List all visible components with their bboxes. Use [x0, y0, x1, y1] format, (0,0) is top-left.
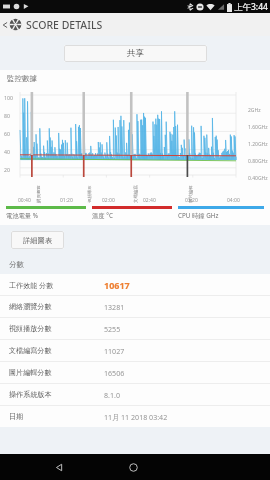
staticText: 40 — [4, 148, 10, 155]
button[interactable]: 日期 — [0, 406, 270, 427]
staticText: 共享 — [127, 48, 144, 59]
staticText: 圖片編輯 — [188, 185, 194, 203]
staticText: 04:00 — [227, 197, 240, 204]
staticText: 01:20 — [60, 197, 73, 204]
staticText: 網絡瀏覽分數 — [9, 302, 52, 311]
button[interactable]: 圖片編輯分數 — [0, 362, 270, 383]
staticText: 日期 — [9, 412, 24, 421]
staticText: 分數 — [9, 260, 24, 269]
staticText: 溫度 °C — [92, 211, 113, 220]
staticText: 02:40 — [143, 197, 156, 204]
staticText: 16506 — [104, 368, 125, 378]
staticText: 0.80GHz — [248, 158, 268, 165]
staticText: 100 — [4, 94, 13, 101]
staticText: 02:00 — [102, 197, 115, 204]
staticText: 電池電量 % — [6, 211, 39, 220]
staticText: 視頻播放 — [87, 185, 93, 203]
staticText: 03:20 — [185, 197, 198, 204]
staticText: 文檔編寫 — [133, 185, 139, 203]
button[interactable]: 詳細圖表 — [11, 231, 64, 249]
staticText: 工作效能 分數 — [9, 280, 54, 290]
staticText: 1.60GHz — [248, 124, 268, 131]
staticText: 2GHz — [248, 107, 261, 114]
staticText: 監控數據 — [7, 74, 37, 83]
staticText: 網頁瀏覽 — [36, 185, 42, 203]
button[interactable]: 共享 — [64, 45, 207, 62]
staticText: 詳細圖表 — [23, 236, 53, 245]
staticText: 文檔編寫分數 — [9, 346, 52, 355]
staticText: 0.40GHz — [248, 175, 268, 182]
staticText: CPU 時鐘 GHz — [178, 211, 219, 220]
staticText: 13281 — [104, 302, 125, 312]
button[interactable]: Back — [48, 456, 70, 478]
staticText: 視頻播放分數 — [9, 324, 52, 333]
staticText: 上午3:44 — [234, 1, 268, 13]
button[interactable]: 工作效能 分數 — [0, 274, 270, 295]
button[interactable]: 文檔編寫分數 — [0, 340, 270, 361]
staticText: 操作系統版本 — [9, 390, 52, 399]
staticText: 圖片編輯分數 — [9, 368, 52, 377]
staticText: 20 — [4, 166, 10, 173]
button[interactable]: Home — [122, 456, 144, 478]
staticText: 60 — [4, 130, 10, 137]
staticText: 11月 11 2018 03:42 — [104, 412, 168, 422]
staticText: 00:40 — [18, 197, 31, 204]
staticText: 5255 — [104, 324, 121, 334]
button[interactable]: 視頻播放分數 — [0, 318, 270, 339]
staticText: 1.20GHz — [248, 141, 268, 148]
staticText: SCORE DETAILS — [26, 18, 103, 32]
staticText: 80 — [4, 112, 10, 119]
button[interactable]: 網絡瀏覽分數 — [0, 296, 270, 317]
button[interactable]: 操作系統版本 — [0, 384, 270, 405]
staticText: 8.1.0 — [104, 390, 120, 400]
button[interactable]: Back — [0, 13, 9, 36]
staticText: 11027 — [104, 346, 125, 356]
staticText: 10617 — [104, 279, 130, 291]
